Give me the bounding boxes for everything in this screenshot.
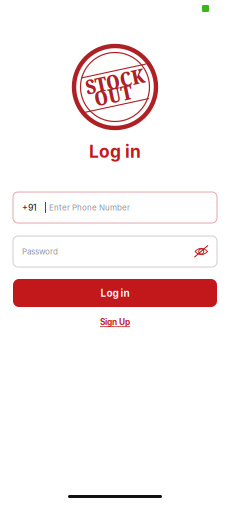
staticText: Enter Phone Number <box>49 203 130 212</box>
button[interactable]: Sign Up <box>100 315 130 329</box>
staticText: Log in <box>89 141 141 162</box>
staticText: Log in <box>100 287 129 299</box>
staticText: STOCK <box>85 67 145 95</box>
staticText: Sign Up <box>100 317 130 327</box>
button[interactable]: Show password <box>190 240 212 262</box>
staticText: OUT <box>94 81 132 109</box>
staticText: +91 <box>22 202 37 213</box>
staticText: Password <box>22 247 58 256</box>
button[interactable]: Log in <box>13 279 217 307</box>
